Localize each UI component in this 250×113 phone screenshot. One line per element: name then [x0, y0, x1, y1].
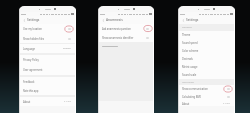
- button[interactable]: Show hidden files: [20, 34, 75, 43]
- button[interactable]: Back: [101, 18, 105, 22]
- staticText: Anamnesis: [106, 18, 123, 22]
- button[interactable]: Sound scale: [179, 71, 234, 79]
- button[interactable]: Back: [181, 18, 185, 22]
- button[interactable]: Metric usage: [179, 63, 234, 71]
- button[interactable]: Rate this app: [20, 86, 75, 95]
- staticText: Color scheme: [182, 49, 199, 53]
- button[interactable]: Show communication: [179, 85, 234, 93]
- staticText: v 1.0.2: [223, 102, 230, 105]
- staticText: Metric usage: [182, 65, 198, 69]
- staticText: Ask anamnesis question: [102, 27, 131, 31]
- button[interactable]: About: [20, 97, 75, 106]
- staticText: Calculating BMI: [182, 95, 201, 99]
- staticText: Feedback: [23, 80, 35, 84]
- staticText: Privacy Policy: [23, 58, 39, 62]
- button[interactable]: Calculating BMI: [179, 93, 234, 101]
- button[interactable]: Sound speed: [179, 39, 234, 47]
- button[interactable]: Decimals: [179, 55, 234, 63]
- staticText: Show anamnesis identifier: [102, 36, 134, 40]
- staticText: English: [63, 47, 71, 50]
- button[interactable]: Theme: [179, 31, 234, 39]
- staticText: Settings: [186, 18, 199, 22]
- staticText: Show hidden files: [23, 37, 44, 41]
- staticText: Decimals: [182, 57, 193, 61]
- staticText: Sound speed: [182, 41, 198, 45]
- button[interactable]: Show anamnesis identifier: [99, 33, 153, 42]
- staticText: Show communication: [182, 87, 208, 91]
- staticText: Theme: [182, 33, 191, 37]
- staticText: v 1.2.3: [64, 100, 71, 103]
- button[interactable]: Color scheme: [179, 47, 234, 55]
- staticText: User agreement: [23, 68, 43, 72]
- staticText: About: [23, 100, 31, 104]
- button[interactable]: Use my location: [20, 24, 75, 34]
- button[interactable]: User agreement: [20, 65, 75, 75]
- staticText: Rate this app: [23, 89, 39, 93]
- button[interactable]: Ask anamnesis question: [99, 24, 153, 33]
- staticText: Settings: [27, 18, 40, 22]
- button[interactable]: Privacy Policy: [20, 55, 75, 65]
- staticText: Language: [23, 47, 35, 51]
- staticText: About: [182, 102, 190, 106]
- staticText: GENERAL: [182, 26, 193, 29]
- staticText: Sound scale: [182, 73, 197, 77]
- button[interactable]: Feedback: [20, 77, 75, 86]
- staticText: Use my location: [23, 27, 42, 31]
- button[interactable]: Language: [20, 44, 75, 53]
- staticText: ADVANCED: [182, 81, 195, 84]
- button[interactable]: About: [179, 101, 234, 106]
- button[interactable]: Back: [22, 18, 26, 22]
